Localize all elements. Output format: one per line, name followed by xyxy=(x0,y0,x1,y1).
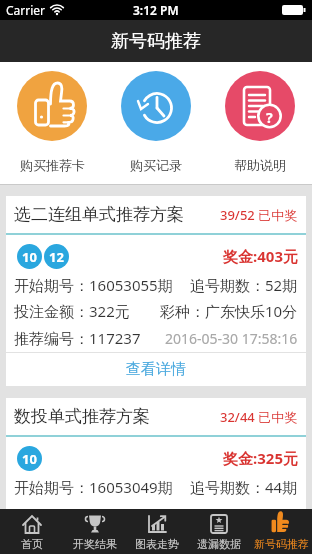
staticText: ? xyxy=(266,108,273,127)
staticText: 12 xyxy=(49,248,64,266)
button[interactable]: ? xyxy=(208,62,312,184)
button[interactable]: 首页 xyxy=(0,509,63,554)
staticText: 新号码推荐 xyxy=(254,537,309,551)
staticText: 39/52 已中奖 xyxy=(220,206,298,224)
staticText: 奖金:325元 xyxy=(223,448,298,468)
staticText: 开始期号：16053049期 xyxy=(14,477,173,497)
button[interactable]: 开奖结果 xyxy=(63,509,126,554)
button[interactable]: 购买记录 xyxy=(104,62,208,184)
staticText: 10 xyxy=(22,450,37,468)
staticText: Carrier xyxy=(6,2,46,18)
staticText: 10 xyxy=(22,248,37,266)
button[interactable]: 查看详情 xyxy=(6,353,306,386)
button[interactable]: 图表走势 xyxy=(126,509,188,554)
staticText: 投注金额：322元 xyxy=(14,301,130,321)
staticText: 奖金:403元 xyxy=(223,246,298,266)
staticText: 数投单式推荐方案 xyxy=(14,406,150,427)
button[interactable]: 遗漏数据 xyxy=(188,509,250,554)
staticText: 彩种：广东快乐10分 xyxy=(160,301,298,321)
staticText: 2016-05-30 17:58:16 xyxy=(165,329,298,348)
staticText: 图表走势 xyxy=(135,537,179,551)
staticText: 推荐编号：117237 xyxy=(14,328,141,348)
staticText: 追号期数：52期 xyxy=(190,275,298,295)
staticText: 3:12 PM xyxy=(133,2,179,18)
button[interactable]: 新号码推荐 xyxy=(250,509,312,554)
button[interactable]: 购买推荐卡 xyxy=(0,62,104,184)
staticText: 购买记录 xyxy=(130,157,182,173)
staticText: 首页 xyxy=(21,537,43,551)
staticText: 购买推荐卡 xyxy=(20,157,85,173)
staticText: 32/44 已中奖 xyxy=(220,408,298,426)
staticText: 选二连组单式推荐方案 xyxy=(14,204,184,225)
staticText: 开奖结果 xyxy=(73,537,117,551)
staticText: 遗漏数据 xyxy=(197,537,241,551)
staticText: 追号期数：44期 xyxy=(190,477,298,497)
staticText: 开始期号：16053055期 xyxy=(14,275,173,295)
staticText: 新号码推荐 xyxy=(111,30,201,53)
staticText: 帮助说明 xyxy=(234,157,286,173)
staticText: 查看详情 xyxy=(126,360,186,379)
